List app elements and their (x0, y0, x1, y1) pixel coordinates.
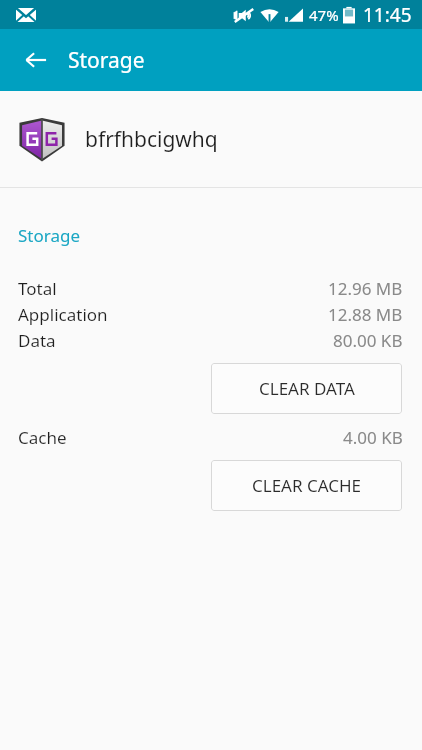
staticText: 4.00 KB (343, 426, 403, 449)
button[interactable]: CLEAR CACHE (211, 460, 402, 511)
staticText: 11:45 (363, 2, 412, 28)
staticText: Storage (68, 46, 145, 75)
staticText: Total (18, 277, 57, 300)
staticText: CLEAR CACHE (252, 474, 362, 497)
staticText: 47% (309, 5, 339, 25)
button[interactable]: Back (12, 36, 60, 84)
staticText: Cache (18, 426, 67, 449)
staticText: 12.96 MB (328, 277, 403, 300)
staticText: Application (18, 303, 108, 326)
staticText: bfrfhbcigwhq (85, 125, 218, 154)
button[interactable]: CLEAR DATA (211, 363, 402, 414)
staticText: 12.88 MB (328, 303, 403, 326)
staticText: Storage (18, 224, 81, 247)
staticText: Data (18, 329, 56, 352)
staticText: CLEAR DATA (259, 377, 355, 400)
button[interactable]: bfrfhbcigwhq (0, 91, 422, 187)
staticText: 80.00 KB (333, 329, 403, 352)
